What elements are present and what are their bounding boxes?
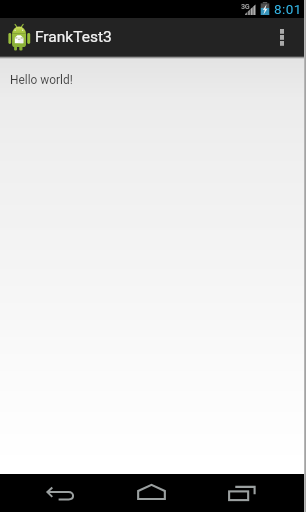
button[interactable]: More options <box>265 18 299 56</box>
staticText: 8:01 <box>274 1 302 17</box>
button[interactable]: Recent apps <box>202 474 282 512</box>
staticText: 3G <box>241 2 250 10</box>
staticText: Hello world! <box>10 73 73 87</box>
button[interactable]: Home <box>111 474 191 512</box>
staticText: FrankTest3 <box>35 28 112 46</box>
button[interactable]: Back <box>20 474 100 512</box>
